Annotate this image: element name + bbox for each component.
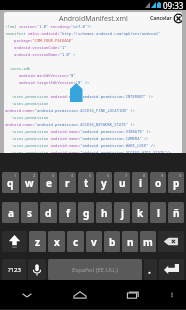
button[interactable]: w [21, 172, 38, 193]
button[interactable]: Cancelar [150, 13, 182, 24]
staticText: q [7, 176, 14, 190]
button[interactable]: e [40, 172, 57, 193]
staticText: j [121, 206, 124, 220]
staticText: 0 [179, 173, 182, 178]
staticText: android:minSdkVersion="8" [5, 73, 76, 80]
button[interactable]: x [48, 231, 65, 252]
staticText: c [73, 235, 79, 249]
staticText: <uses-permission [5, 115, 49, 122]
staticText: 7 [125, 173, 128, 178]
staticText: android:name="android.permission.ACCESS_… [5, 122, 135, 129]
staticText: <?xml version="1.0" encoding="utf-8"?> [5, 24, 92, 31]
staticText: android:name="android.permission.ACCESS_… [5, 108, 135, 115]
button[interactable]: m [140, 231, 156, 252]
staticText: Cancelar [150, 15, 172, 22]
staticText: t [84, 176, 89, 190]
staticText: e [46, 176, 52, 190]
staticText: 5 [89, 173, 92, 178]
staticText: 09:33 [163, 0, 184, 10]
staticText: AndroidManifest.xml [59, 14, 128, 24]
button[interactable]: a [2, 202, 19, 223]
button[interactable]: Shift [2, 231, 27, 252]
button[interactable]: n [122, 231, 138, 252]
button[interactable]: Voice input [28, 259, 46, 280]
staticText: 3 [52, 173, 55, 178]
button[interactable]: s [21, 202, 38, 223]
button[interactable]: d [40, 202, 57, 223]
button[interactable]: z [29, 231, 46, 252]
staticText: android:versionName="1.0" > [5, 52, 76, 59]
staticText: <uses-permission android:name="android.p… [5, 143, 156, 150]
button[interactable]: p [168, 172, 184, 193]
staticText: <uses-permission android:name="android.p… [5, 150, 172, 153]
button[interactable]: Recent apps [120, 280, 146, 309]
staticText: i [139, 176, 142, 190]
button[interactable]: q [2, 172, 19, 193]
staticText: s [27, 206, 33, 220]
staticText: b [109, 235, 116, 249]
staticText: 2 [33, 173, 36, 178]
button[interactable]: f [59, 202, 76, 223]
button[interactable]: ?123 [2, 259, 26, 280]
button[interactable]: g [78, 202, 94, 223]
staticText: ?123 [8, 266, 21, 274]
staticText: <manifest xmlns:android="http://schemas.… [5, 31, 160, 38]
button[interactable]: More options [165, 280, 179, 309]
staticText: 1 [14, 173, 17, 178]
button[interactable]: t [78, 172, 94, 193]
staticText: <uses-permission [5, 101, 49, 108]
staticText: p [173, 176, 180, 190]
staticText: Español (EE.UU.) [72, 266, 118, 274]
staticText: v [91, 235, 97, 249]
staticText: h [101, 206, 108, 220]
button[interactable]: i [132, 172, 148, 193]
button[interactable]: u [114, 172, 130, 193]
button[interactable]: l [150, 202, 166, 223]
staticText: k [137, 206, 144, 220]
button[interactable]: o [150, 172, 166, 193]
staticText: w [25, 176, 34, 190]
button[interactable]: v [86, 231, 102, 252]
staticText: l [157, 206, 160, 220]
staticText: n [127, 235, 134, 249]
button[interactable]: b [104, 231, 120, 252]
staticText: 6 [107, 173, 110, 178]
staticText: z [35, 235, 40, 249]
staticText: <uses-permission android:name="android.p… [5, 136, 149, 143]
staticText: x [54, 235, 60, 249]
staticText: <uses-sdk [5, 66, 31, 73]
staticText: <uses-permission android:name="android.p… [5, 129, 151, 136]
staticText: a [8, 206, 14, 220]
staticText: 8 [143, 173, 146, 178]
button[interactable]: y [96, 172, 112, 193]
staticText: y [101, 176, 107, 190]
button[interactable]: r [59, 172, 76, 193]
staticText: m [143, 235, 153, 249]
button[interactable]: Español (EE.UU.) [48, 259, 142, 280]
staticText: ñ [173, 206, 180, 220]
staticText: 9 [161, 173, 164, 178]
staticText: r [65, 176, 70, 190]
staticText: u [119, 176, 126, 190]
button[interactable]: h [96, 202, 112, 223]
staticText: 4 [71, 173, 74, 178]
button[interactable]: Backspace [158, 231, 184, 252]
staticText: o [155, 176, 162, 190]
button[interactable]: ñ [168, 202, 184, 223]
button[interactable]: Enter [159, 259, 184, 280]
staticText: android:targetSdkVersion="8" /> [5, 80, 90, 87]
staticText: package="COM.YOUR.PACKAGE" [5, 38, 74, 45]
staticText: <uses-permission android:name="android.p… [5, 94, 154, 101]
staticText: f [66, 206, 70, 220]
button[interactable]: j [114, 202, 130, 223]
button[interactable]: Period [144, 259, 157, 280]
staticText: g [83, 206, 90, 220]
staticText: android:versionCode="1" [5, 45, 67, 52]
button[interactable]: Home [67, 280, 93, 309]
staticText: d [45, 206, 52, 220]
button[interactable]: k [132, 202, 148, 223]
button[interactable]: Hide keyboard [14, 280, 40, 309]
button[interactable]: c [67, 231, 84, 252]
